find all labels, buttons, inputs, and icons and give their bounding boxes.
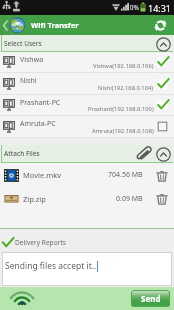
staticText: 14:31 — [148, 2, 172, 14]
button[interactable]: Collapse section — [155, 36, 171, 52]
button[interactable]: Nishi — [0, 73, 174, 95]
button[interactable]: Delivery Reports — [0, 233, 174, 252]
button[interactable]: Vishwa — [0, 52, 174, 73]
button[interactable]: Refresh — [146, 15, 174, 35]
staticText: Select Users — [4, 39, 42, 48]
button[interactable]: Remove file — [154, 168, 169, 183]
staticText: Amruta-PC — [20, 119, 56, 129]
button[interactable]: Amruta-PC — [0, 116, 174, 138]
staticText: 704.56 MB — [108, 170, 143, 180]
button[interactable]: Movie.mkv — [0, 163, 174, 187]
staticText: Vishwa — [20, 55, 44, 65]
staticText: Nishi(192.168.0.104) — [98, 84, 154, 92]
staticText: Nishi — [20, 76, 37, 86]
button[interactable]: Zip.zip — [0, 187, 174, 210]
staticText: Sending files accept it.. — [5, 260, 97, 272]
staticText: Prashant-PC — [20, 98, 61, 108]
button[interactable]: Wifi status — [12, 291, 32, 306]
button[interactable]: Sending files accept it.. — [2, 252, 172, 286]
button[interactable]: Attach file — [135, 146, 151, 162]
staticText: Delivery Reports — [15, 238, 66, 247]
button[interactable]: Collapse section — [155, 146, 171, 162]
staticText: 0.09 MB — [116, 194, 143, 204]
button[interactable]: Navigate up — [0, 15, 30, 35]
staticText: Prashant(192.168.0.100) — [88, 105, 154, 113]
staticText: Movie.mkv — [23, 170, 62, 180]
button[interactable]: Prashant-PC — [0, 95, 174, 116]
staticText: Amruta(192.168.0.108) — [92, 127, 154, 135]
staticText: Attach Files — [4, 149, 40, 158]
staticText: Send — [141, 293, 161, 304]
staticText: Zip.zip — [23, 194, 46, 204]
button[interactable]: Remove file — [154, 191, 169, 206]
staticText: Wifi Transfer — [31, 20, 79, 30]
staticText: Vishwa(192.168.0.106) — [93, 62, 154, 70]
staticText: 10% — [126, 3, 139, 12]
button[interactable]: Send — [131, 290, 170, 307]
